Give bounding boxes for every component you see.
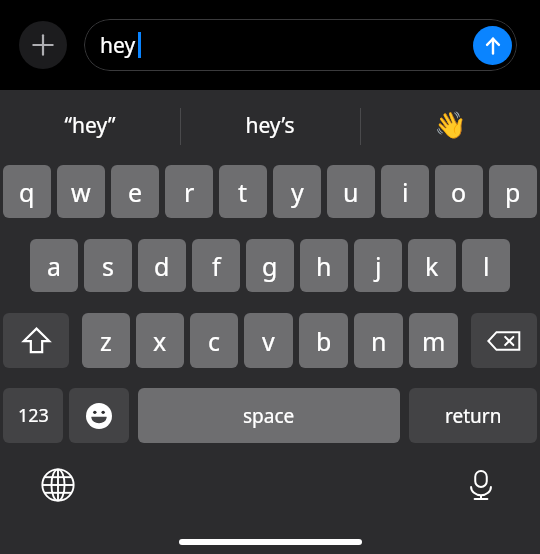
staticText: x (153, 324, 167, 358)
staticText: q (19, 175, 35, 209)
button[interactable]: space (138, 388, 400, 443)
staticText: return (445, 403, 502, 429)
button[interactable]: n (354, 313, 403, 368)
button[interactable]: d (138, 239, 186, 292)
staticText: p (505, 175, 521, 209)
button[interactable]: hey’s (180, 90, 360, 160)
staticText: space (243, 403, 295, 429)
button[interactable]: r (165, 165, 213, 218)
staticText: z (100, 324, 112, 358)
button[interactable]: g (246, 239, 294, 292)
staticText: i (402, 175, 409, 209)
button[interactable]: Send (473, 26, 512, 65)
button[interactable]: j (354, 239, 402, 292)
staticText: u (343, 175, 359, 209)
button[interactable]: e (111, 165, 159, 218)
button[interactable]: 123 (3, 388, 63, 443)
button[interactable]: s (84, 239, 132, 292)
staticText: c (208, 324, 221, 358)
button[interactable]: v (244, 313, 293, 368)
staticText: a (47, 249, 62, 283)
button[interactable]: z (82, 313, 130, 368)
button[interactable]: u (327, 165, 375, 218)
button[interactable]: t (219, 165, 267, 218)
button[interactable]: c (190, 313, 238, 368)
button[interactable]: q (3, 165, 51, 218)
staticText: l (483, 249, 490, 283)
button[interactable]: Dictation (457, 461, 505, 509)
button[interactable]: k (408, 239, 456, 292)
button[interactable]: “hey” (0, 90, 180, 160)
button[interactable]: l (462, 239, 510, 292)
staticText: y (291, 175, 304, 209)
staticText: “hey” (64, 111, 116, 140)
staticText: 123 (18, 403, 49, 428)
button[interactable]: h (300, 239, 348, 292)
staticText: b (316, 324, 332, 358)
staticText: t (238, 175, 248, 209)
staticText: h (316, 249, 332, 283)
staticText: e (128, 175, 143, 209)
button[interactable]: a (30, 239, 78, 292)
button[interactable]: o (435, 165, 483, 218)
staticText: o (451, 175, 467, 209)
button[interactable]: w (57, 165, 105, 218)
button[interactable]: y (273, 165, 321, 218)
button[interactable]: Emoji (69, 388, 129, 443)
button[interactable]: return (409, 388, 537, 443)
staticText: 👋 (434, 110, 467, 140)
staticText: s (102, 249, 114, 283)
staticText: g (262, 249, 278, 283)
staticText: hey’s (245, 111, 295, 140)
button[interactable]: hey (84, 19, 517, 71)
button[interactable]: Delete (471, 313, 537, 368)
staticText: r (184, 175, 195, 209)
staticText: k (425, 249, 439, 283)
staticText: m (422, 324, 446, 358)
staticText: v (262, 324, 275, 358)
button[interactable]: Shift (3, 313, 69, 368)
staticText: hey (100, 31, 136, 60)
button[interactable]: b (299, 313, 348, 368)
button[interactable]: Add attachment (19, 21, 67, 69)
button[interactable]: p (489, 165, 537, 218)
button[interactable]: 👋 (360, 90, 540, 160)
staticText: n (371, 324, 387, 358)
button[interactable]: f (192, 239, 240, 292)
staticText: j (375, 249, 382, 283)
button[interactable]: m (409, 313, 458, 368)
staticText: f (212, 249, 221, 283)
button[interactable]: x (136, 313, 184, 368)
staticText: d (154, 249, 170, 283)
staticText: w (71, 175, 91, 209)
button[interactable]: i (381, 165, 429, 218)
button[interactable]: Change keyboard (34, 461, 82, 509)
